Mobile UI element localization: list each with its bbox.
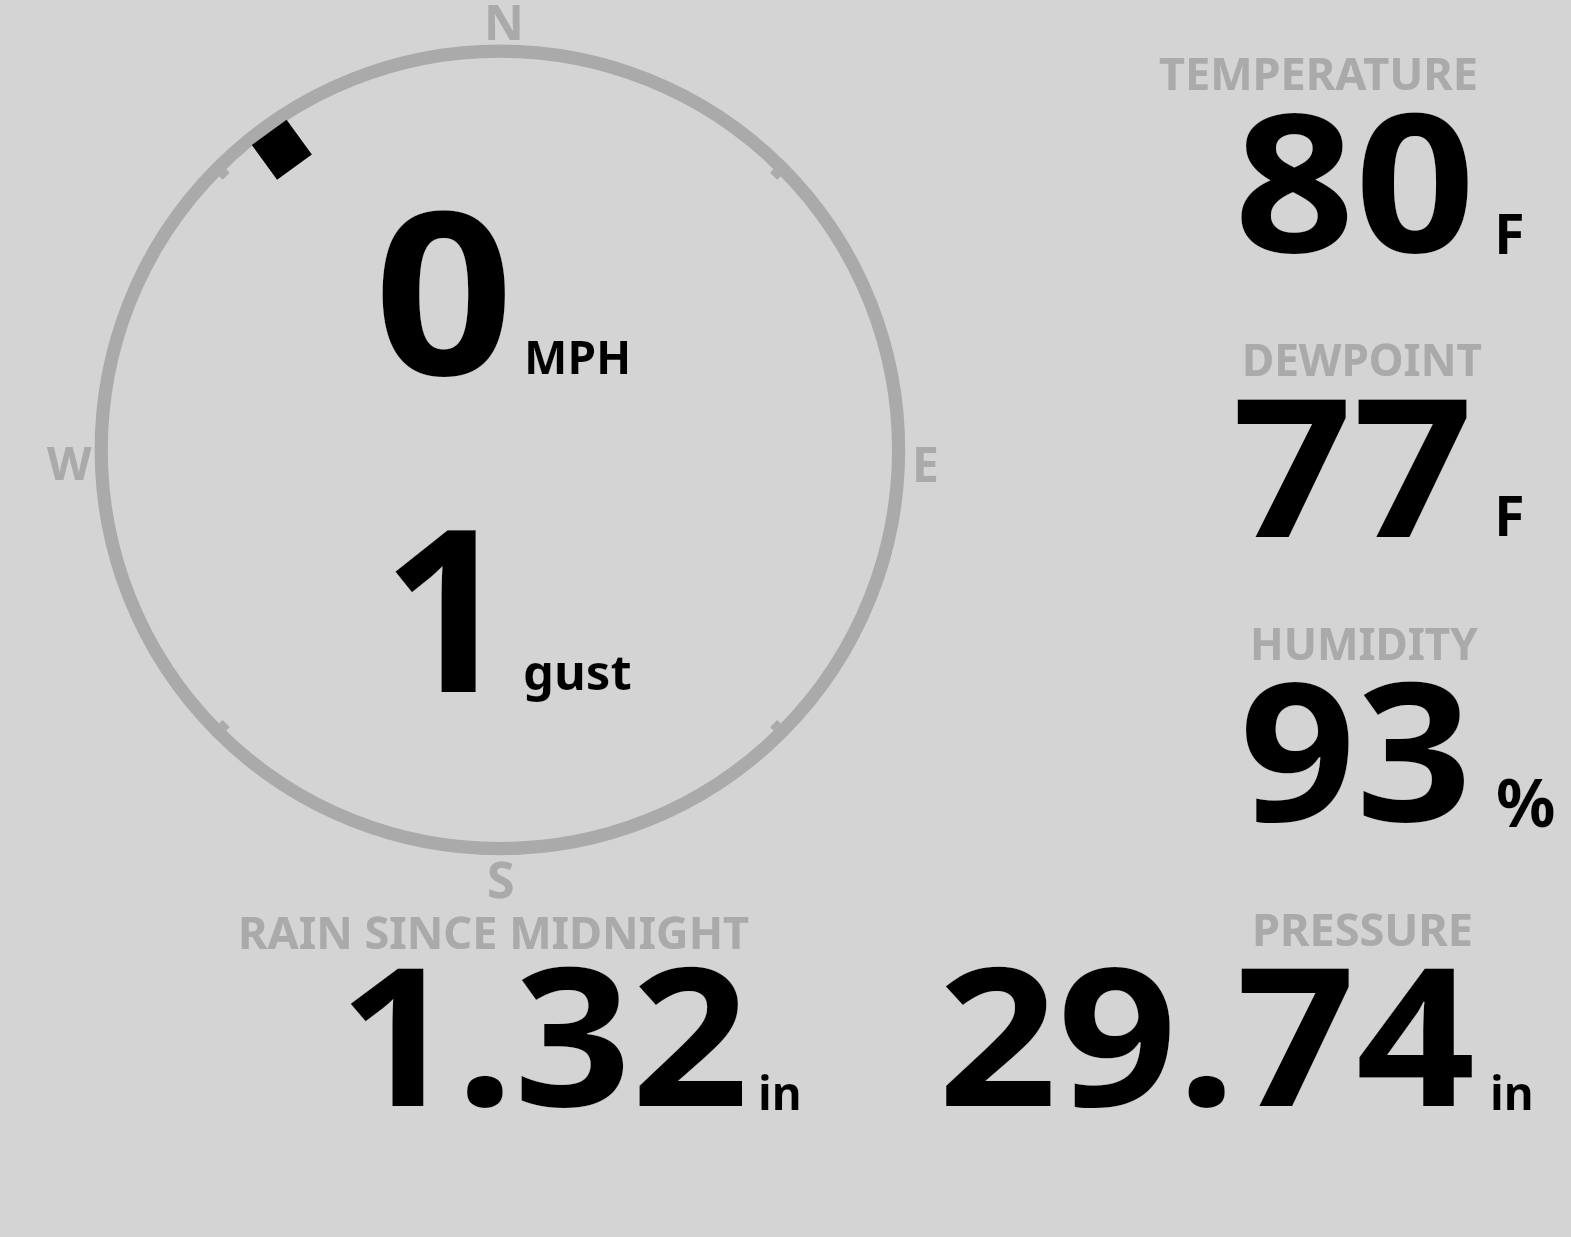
staticText: HUMIDITY: [1250, 613, 1478, 673]
staticText: 1.32: [339, 901, 749, 1163]
button[interactable]: Pressure 29.74 inches: [900, 898, 1560, 1123]
staticText: %: [1496, 756, 1556, 846]
staticText: in: [1490, 1061, 1534, 1124]
staticText: DEWPOINT: [1242, 329, 1482, 389]
staticText: 29.74: [938, 901, 1476, 1163]
button[interactable]: Rain since midnight 1.32 inches: [200, 898, 820, 1123]
button[interactable]: Humidity 93 percent: [1120, 610, 1570, 840]
staticText: RAIN SINCE MIDNIGHT: [238, 901, 750, 962]
button[interactable]: Wind direction compass, 0 miles per hour…: [96, 46, 904, 854]
staticText: gust: [523, 638, 632, 705]
button[interactable]: Temperature 80 degrees Fahrenheit: [1120, 40, 1560, 270]
staticText: 1: [382, 449, 512, 758]
button[interactable]: Dewpoint 77 degrees Fahrenheit: [1120, 325, 1560, 555]
staticText: W: [47, 431, 92, 494]
staticText: F: [1494, 194, 1525, 270]
staticText: E: [912, 431, 939, 496]
staticText: 80: [1234, 47, 1476, 309]
staticText: MPH: [524, 325, 632, 388]
staticText: N: [484, 0, 524, 55]
staticText: 77: [1232, 332, 1474, 594]
staticText: F: [1494, 476, 1525, 552]
staticText: PRESSURE: [1252, 898, 1473, 959]
staticText: TEMPERATURE: [1159, 42, 1478, 103]
staticText: S: [487, 845, 515, 913]
staticText: 93: [1239, 616, 1473, 878]
staticText: in: [758, 1061, 802, 1124]
staticText: 0: [374, 132, 514, 441]
